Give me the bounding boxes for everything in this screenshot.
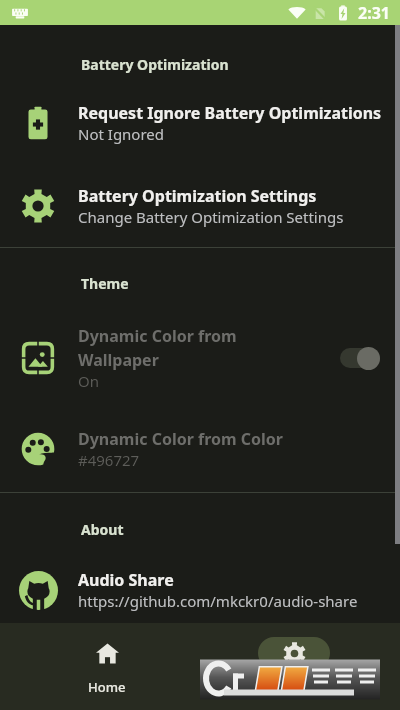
staticText: Request Ignore Battery Optimizations <box>78 102 382 124</box>
staticText: Theme <box>81 274 129 293</box>
staticText: https://github.com/mkckr0/audio-share <box>78 591 358 611</box>
staticText: 2:31 <box>358 2 390 24</box>
staticText: #496727 <box>78 450 140 470</box>
staticText: Not Ignored <box>78 124 165 144</box>
staticText: Settings <box>268 678 319 696</box>
staticText: About <box>81 520 124 539</box>
staticText: Dynamic Color from Wallpaper <box>78 325 316 371</box>
button[interactable]: Battery <box>0 102 400 144</box>
staticText: Change Battery Optimization Settings <box>78 207 344 227</box>
button[interactable]: Wallpaper <box>0 325 400 391</box>
button[interactable]: Palette <box>0 428 400 470</box>
button[interactable]: Settings <box>200 623 387 710</box>
button[interactable]: GitHub <box>0 569 400 611</box>
button[interactable]: Dynamic Color from Wallpaper toggle <box>330 340 390 376</box>
staticText: Battery Optimization Settings <box>78 185 317 207</box>
staticText: On <box>78 371 99 391</box>
staticText: Audio Share <box>78 569 174 591</box>
other: Battery <box>0 106 78 140</box>
other: GitHub <box>0 571 78 610</box>
staticText: Home <box>88 678 126 696</box>
other: Wallpaper <box>0 341 78 375</box>
staticText: Battery Optimization <box>81 55 229 74</box>
other: Settings <box>0 189 78 223</box>
other: Palette <box>0 432 78 466</box>
staticText: Dynamic Color from Color <box>78 428 283 450</box>
button[interactable]: Home <box>13 623 200 710</box>
button[interactable]: Settings <box>0 185 400 227</box>
